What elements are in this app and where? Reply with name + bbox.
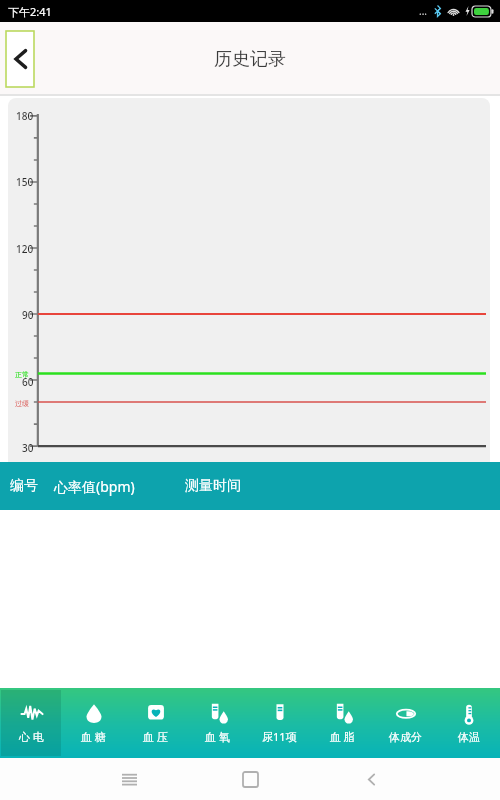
- staticText: 120: [16, 242, 34, 256]
- button[interactable]: 心 电: [1, 690, 61, 756]
- staticText: 60: [22, 375, 34, 389]
- staticText: 180: [16, 109, 34, 123]
- staticText: 心 电: [19, 729, 44, 744]
- button[interactable]: Back: [6, 31, 34, 87]
- staticText: 150: [16, 175, 34, 189]
- button[interactable]: 体温: [437, 688, 500, 758]
- button[interactable]: 血 糖: [62, 688, 124, 758]
- staticText: 测量时间: [185, 477, 241, 495]
- button[interactable]: 血 氧: [186, 688, 248, 758]
- button[interactable]: 尿11项: [248, 688, 311, 758]
- staticText: 体温: [458, 730, 480, 744]
- staticText: 正常: [15, 370, 29, 379]
- staticText: 90: [22, 308, 34, 322]
- staticText: ...: [419, 4, 428, 18]
- staticText: 心率值(bpm): [54, 477, 135, 496]
- staticText: 下午2:41: [8, 4, 52, 19]
- button[interactable]: 体成分: [374, 688, 437, 758]
- button[interactable]: Back: [351, 759, 391, 799]
- staticText: 过缓: [15, 399, 29, 408]
- staticText: 血 压: [143, 729, 168, 744]
- staticText: 尿11项: [262, 729, 297, 744]
- button[interactable]: 血 压: [124, 688, 186, 758]
- button[interactable]: 血 脂: [311, 688, 374, 758]
- button[interactable]: Home: [230, 759, 270, 799]
- button[interactable]: Menu: [109, 759, 149, 799]
- staticText: 编号: [10, 477, 38, 495]
- button[interactable]: 编号: [0, 462, 500, 510]
- staticText: 体成分: [389, 730, 422, 744]
- staticText: 血 糖: [81, 729, 106, 744]
- staticText: 30: [22, 441, 34, 455]
- staticText: 血 脂: [330, 729, 355, 744]
- staticText: 血 氧: [205, 729, 230, 744]
- staticText: 历史记录: [214, 48, 286, 71]
